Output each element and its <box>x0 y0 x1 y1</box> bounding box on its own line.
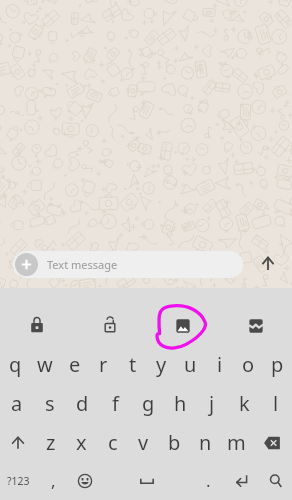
button[interactable]: m <box>221 423 252 462</box>
staticText: s <box>45 390 55 417</box>
button[interactable]: Shift <box>0 423 36 462</box>
button[interactable]: Image <box>146 306 219 342</box>
button[interactable]: w <box>30 345 60 384</box>
staticText: t <box>129 351 137 378</box>
button[interactable]: b <box>159 423 190 462</box>
button[interactable]: x <box>66 423 97 462</box>
staticText: , <box>51 469 56 492</box>
staticText: z <box>46 429 56 456</box>
staticText: v <box>138 429 149 456</box>
staticText: u <box>184 351 197 378</box>
button[interactable]: Backspace <box>252 423 292 462</box>
button[interactable]: i <box>205 345 234 384</box>
staticText: k <box>239 390 250 417</box>
button[interactable]: r <box>89 345 118 384</box>
staticText: j <box>209 390 215 417</box>
staticText: ?123 <box>7 474 30 488</box>
button[interactable]: Search <box>259 462 292 500</box>
button[interactable]: Unlock <box>73 306 146 342</box>
staticText: n <box>199 429 212 456</box>
button[interactable]: f <box>99 384 132 423</box>
button[interactable]: j <box>196 384 228 423</box>
button[interactable]: k <box>228 384 260 423</box>
button[interactable]: c <box>97 423 128 462</box>
staticText: d <box>76 390 89 417</box>
button[interactable]: v <box>128 423 159 462</box>
staticText: g <box>142 390 155 417</box>
staticText: c <box>108 429 118 456</box>
staticText: i <box>217 351 223 378</box>
button[interactable]: t <box>118 345 147 384</box>
button[interactable]: Broken image <box>219 306 292 342</box>
button[interactable]: Text message <box>13 251 243 278</box>
staticText: Text message <box>47 257 118 272</box>
button[interactable]: Send <box>253 249 283 279</box>
button[interactable]: p <box>263 345 292 384</box>
button[interactable]: z <box>36 423 66 462</box>
staticText: m <box>227 429 246 456</box>
staticText: . <box>206 469 211 492</box>
button[interactable]: Space <box>101 462 192 500</box>
button[interactable]: ?123 <box>0 462 37 500</box>
button[interactable]: u <box>176 345 205 384</box>
button[interactable]: s <box>33 384 66 423</box>
staticText: p <box>271 351 284 378</box>
button[interactable]: h <box>164 384 196 423</box>
staticText: f <box>112 390 119 417</box>
button[interactable]: Lock <box>0 306 73 342</box>
button[interactable]: e <box>60 345 89 384</box>
staticText: y <box>156 351 167 378</box>
staticText: r <box>99 351 108 378</box>
staticText: x <box>76 429 87 456</box>
button[interactable]: o <box>234 345 263 384</box>
staticText: b <box>168 429 181 456</box>
button[interactable]: q <box>0 345 30 384</box>
staticText: o <box>242 351 255 378</box>
staticText: e <box>69 351 81 378</box>
button[interactable]: a <box>0 384 33 423</box>
button[interactable]: Enter <box>225 462 259 500</box>
staticText: w <box>37 351 53 378</box>
button[interactable]: l <box>260 384 292 423</box>
button[interactable]: . <box>192 462 225 500</box>
staticText: q <box>9 351 22 378</box>
button[interactable]: n <box>190 423 221 462</box>
staticText: l <box>273 390 279 417</box>
button[interactable]: Emoji <box>69 462 101 500</box>
staticText: a <box>11 390 23 417</box>
button[interactable]: g <box>132 384 164 423</box>
button[interactable]: , <box>37 462 69 500</box>
button[interactable]: d <box>66 384 99 423</box>
button[interactable]: y <box>147 345 176 384</box>
staticText: h <box>174 390 187 417</box>
